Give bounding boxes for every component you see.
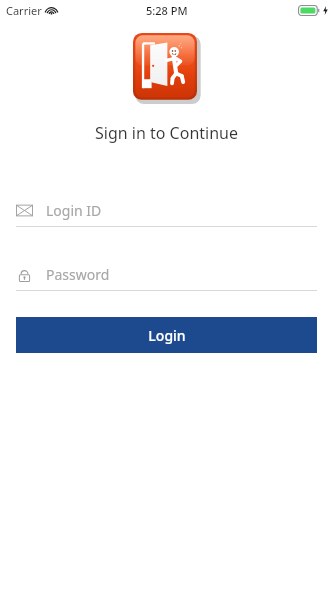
staticText: 5:28 PM <box>146 3 188 18</box>
staticText: Login <box>148 326 186 345</box>
staticText: Password <box>46 265 110 284</box>
staticText: Carrier <box>6 3 42 18</box>
staticText: Login ID <box>46 201 102 220</box>
button[interactable]: Login ID <box>16 196 317 227</box>
staticText: Sign in to Continue <box>0 122 333 144</box>
button[interactable]: Login <box>16 317 317 353</box>
button[interactable]: Password <box>16 260 317 291</box>
